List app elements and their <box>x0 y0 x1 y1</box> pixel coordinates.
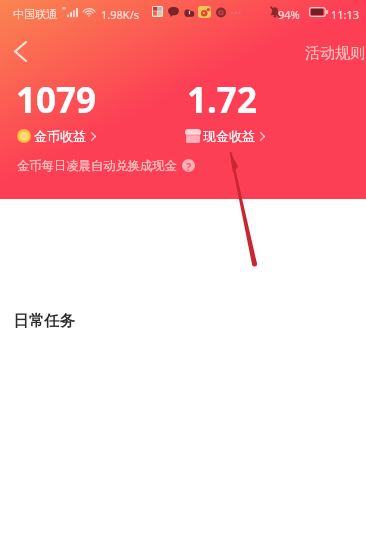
staticText: 94% <box>278 7 300 22</box>
staticText: 11:13 <box>331 7 360 22</box>
button[interactable]: 活动规则 <box>301 40 366 67</box>
staticText: 中国联通 <box>13 7 57 21</box>
staticText: 现金收益 <box>203 128 255 144</box>
button[interactable]: 金币收益 <box>15 126 98 146</box>
button[interactable]: 返回 <box>0 31 40 71</box>
staticText: ? <box>186 159 192 172</box>
staticText: 1.72 <box>187 76 257 124</box>
staticText: 1079 <box>16 76 97 124</box>
staticText: 活动规则 <box>305 44 365 63</box>
button[interactable]: 说明 <box>182 159 195 172</box>
staticText: 金币每日凌晨自动兑换成现金 <box>17 158 177 173</box>
staticText: 1.98K/s <box>101 7 139 22</box>
staticText: 金币收益 <box>34 128 86 144</box>
staticText: 日常任务 <box>13 311 75 331</box>
button[interactable]: 现金收益 <box>183 126 267 146</box>
